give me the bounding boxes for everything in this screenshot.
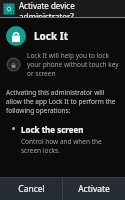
other: Device administrator — [3, 3, 15, 15]
button[interactable]: Cancel — [0, 178, 62, 200]
staticText: Cancel — [18, 183, 45, 195]
staticText: Lock It will help you to lock your phone… — [27, 51, 120, 78]
staticText: Lock the screen — [21, 124, 84, 135]
button[interactable]: Activate — [63, 178, 125, 200]
staticText: Control how and when the screen locks. — [21, 137, 120, 155]
staticText: Activate — [78, 183, 110, 195]
staticText: Activating this administrator will allow… — [6, 88, 120, 115]
staticText: Activate device administrator? — [19, 0, 125, 17]
staticText: Lock It — [34, 29, 69, 43]
